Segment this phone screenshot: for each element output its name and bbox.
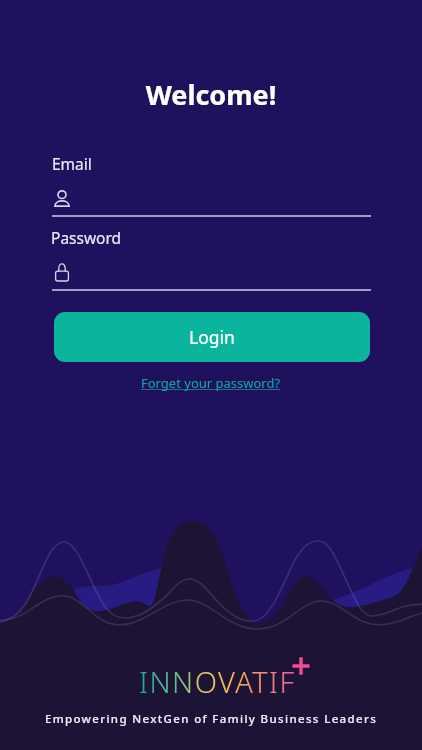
staticText: INNOVATIF <box>139 662 296 701</box>
button[interactable]: Forget your password? <box>137 372 285 394</box>
staticText: Welcome! <box>0 76 422 113</box>
button[interactable]: Login <box>54 312 370 362</box>
other: Email <box>54 190 70 207</box>
staticText: Email <box>52 153 92 174</box>
staticText: Empowering NextGen of Family Business Le… <box>45 711 378 727</box>
other: Password <box>54 263 70 282</box>
staticText: Password <box>51 227 122 248</box>
staticText: Forget your password? <box>141 374 281 392</box>
staticText: Login <box>189 325 235 349</box>
